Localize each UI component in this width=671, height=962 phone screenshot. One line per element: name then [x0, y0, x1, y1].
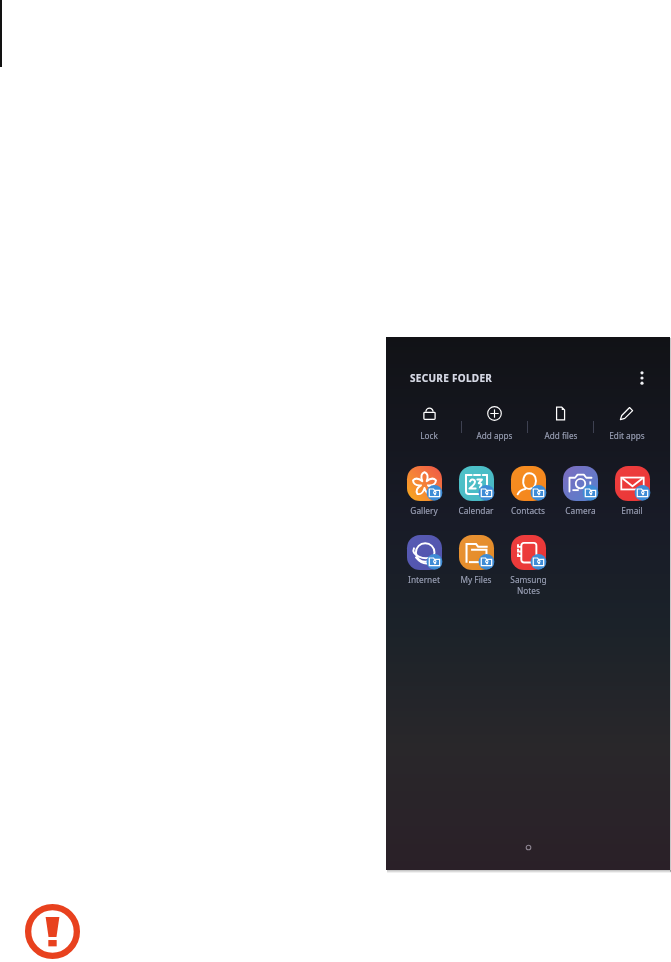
button[interactable]: Samsung Notes — [502, 535, 554, 596]
button[interactable]: Email — [606, 466, 658, 516]
staticText: Add apps — [476, 430, 513, 441]
button[interactable]: More options — [633, 369, 651, 387]
button[interactable]: Internet — [398, 535, 450, 585]
button[interactable]: SECURE FOLDER — [410, 371, 493, 385]
button[interactable]: Gallery — [398, 466, 450, 516]
staticText: Edit apps — [609, 430, 645, 441]
staticText: Lock — [420, 430, 438, 441]
staticText: Samsung Notes — [510, 574, 547, 596]
staticText: Email — [621, 505, 643, 516]
button[interactable]: Contacts — [502, 466, 554, 516]
staticText: Gallery — [410, 505, 438, 516]
button[interactable]: Camera — [554, 466, 606, 516]
button[interactable]: My Files — [450, 535, 502, 585]
staticText: My Files — [460, 574, 492, 585]
button[interactable]: Home — [525, 844, 532, 851]
button[interactable]: Add apps — [462, 405, 527, 441]
button[interactable]: Lock — [397, 405, 461, 441]
staticText: SECURE FOLDER — [410, 371, 493, 385]
staticText: Camera — [565, 505, 596, 516]
staticText: Internet — [408, 574, 440, 585]
staticText: Add files — [544, 430, 578, 441]
button[interactable]: Add files — [528, 405, 593, 441]
staticText: Contacts — [511, 505, 545, 516]
staticText: Calendar — [458, 505, 494, 516]
button[interactable]: Calendar — [450, 466, 502, 516]
button[interactable]: Edit apps — [594, 405, 659, 441]
